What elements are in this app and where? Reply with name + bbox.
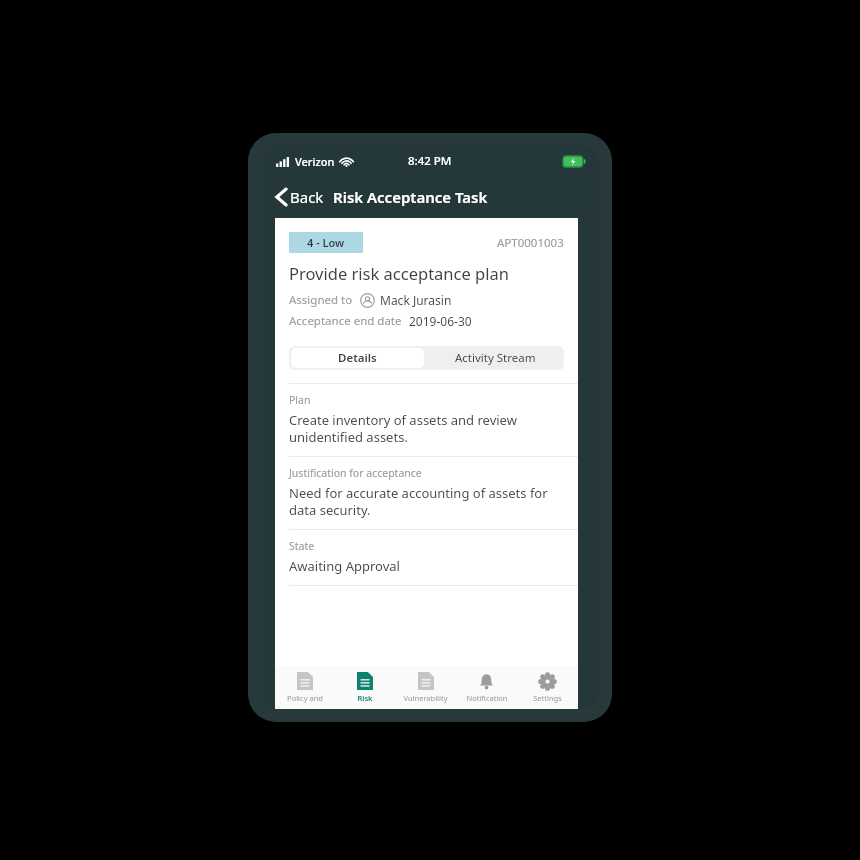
staticText: Risk Acceptance Task (333, 187, 488, 207)
staticText: Need for accurate accounting of assets f… (289, 484, 548, 519)
button[interactable]: Policy and Compliance (275, 666, 335, 709)
staticText: Policy and Compliance (275, 693, 335, 703)
staticText: Risk (357, 693, 373, 703)
staticText: Activity Stream (455, 350, 536, 366)
staticText: Plan (289, 393, 311, 407)
staticText: Justification for acceptance (289, 466, 422, 480)
staticText: Vulnerability Response (395, 693, 456, 703)
staticText: Notification (466, 693, 508, 703)
staticText: Assigned to (289, 292, 353, 308)
staticText: Awaiting Approval (289, 557, 400, 575)
staticText: 2019-06-30 (409, 313, 472, 329)
staticText: Verizon (295, 154, 335, 169)
staticText: 4 - Low (307, 235, 345, 250)
button[interactable]: Details (291, 348, 424, 368)
staticText: Acceptance end date (289, 313, 402, 329)
staticText: Provide risk acceptance plan (289, 262, 509, 284)
button[interactable]: Settings (517, 666, 578, 709)
staticText: Mack Jurasin (380, 292, 452, 308)
button[interactable]: Notification (456, 666, 517, 709)
staticText: Create inventory of assets and review un… (289, 411, 517, 446)
button[interactable]: Vulnerability Response (395, 666, 456, 709)
staticText: Settings (533, 693, 562, 703)
button[interactable]: Risk (335, 666, 395, 709)
button[interactable]: Back (272, 183, 328, 211)
button[interactable]: Activity Stream (426, 346, 564, 370)
staticText: Details (338, 350, 377, 366)
staticText: APT0001003 (497, 235, 564, 251)
staticText: State (289, 539, 315, 553)
staticText: Back (290, 187, 324, 207)
staticText: 8:42 PM (408, 153, 452, 169)
